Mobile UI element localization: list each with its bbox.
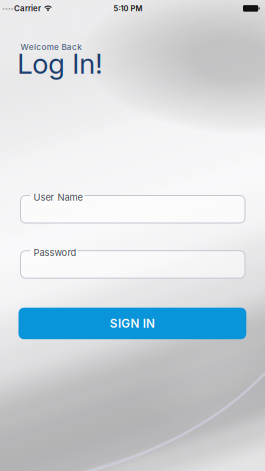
staticText: User Name (33, 192, 82, 203)
staticText: Carrier (14, 4, 41, 13)
button[interactable]: User Name text field (20, 195, 245, 223)
staticText: Welcome Back (20, 42, 82, 52)
staticText: SIGN IN (110, 316, 155, 331)
staticText: Password (33, 247, 76, 258)
staticText: 5:10 PM (113, 4, 142, 13)
button[interactable]: Password text field (20, 251, 245, 278)
staticText: Log In! (17, 47, 102, 81)
button[interactable]: SIGN IN (18, 308, 246, 339)
